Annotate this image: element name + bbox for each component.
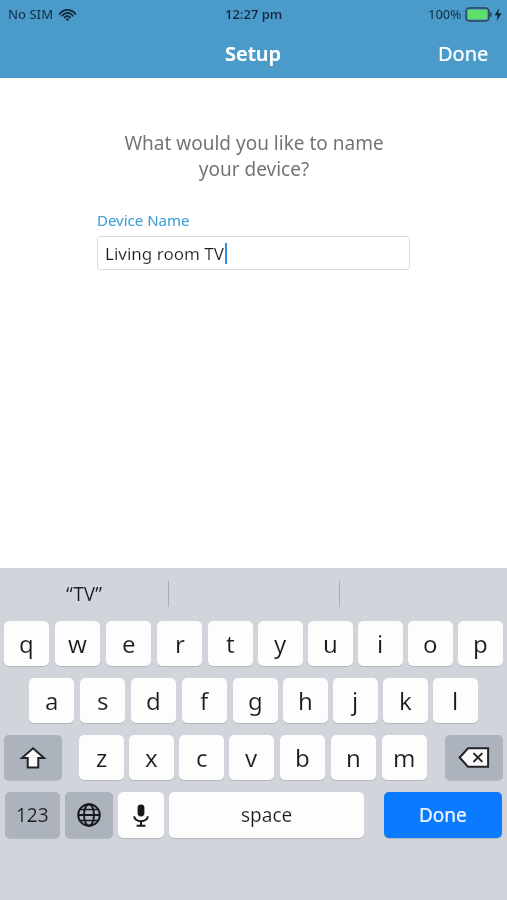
staticText: Setup — [225, 40, 282, 67]
staticText: j — [352, 684, 359, 717]
button[interactable]: Backspace — [445, 734, 503, 780]
button[interactable]: s — [80, 677, 125, 723]
button[interactable]: Shift — [4, 734, 62, 780]
staticText: i — [377, 627, 384, 660]
staticText: z — [96, 741, 108, 774]
staticText: What would you like to name your device? — [124, 130, 384, 181]
staticText: k — [399, 684, 412, 717]
staticText: Done — [419, 802, 467, 828]
staticText: h — [298, 684, 313, 717]
button[interactable]: o — [408, 620, 453, 666]
staticText: q — [19, 627, 34, 660]
button[interactable]: p — [458, 620, 503, 666]
staticText: Living room TV — [105, 242, 224, 265]
button[interactable]: f — [182, 677, 227, 723]
button[interactable]: n — [331, 734, 376, 780]
staticText: r — [175, 627, 185, 660]
button[interactable]: z — [79, 734, 124, 780]
button[interactable]: 123 — [5, 791, 60, 838]
staticText: Done — [438, 40, 489, 67]
button[interactable]: Living room TV — [97, 236, 410, 270]
button[interactable]: y — [258, 620, 303, 666]
staticText: b — [295, 741, 310, 774]
button[interactable]: Done — [420, 32, 507, 75]
staticText: Device Name — [97, 210, 190, 230]
staticText: a — [45, 684, 59, 717]
staticText: space — [241, 802, 293, 828]
staticText: d — [146, 684, 161, 717]
button[interactable]: space — [169, 791, 364, 838]
button[interactable]: c — [179, 734, 224, 780]
staticText: v — [245, 741, 258, 774]
staticText: l — [452, 684, 459, 717]
button[interactable]: k — [383, 677, 428, 723]
button[interactable]: Done — [384, 791, 502, 838]
button[interactable]: d — [131, 677, 176, 723]
button[interactable]: t — [208, 620, 253, 666]
staticText: e — [122, 627, 136, 660]
staticText: No SIM — [8, 5, 54, 23]
button[interactable]: w — [55, 620, 100, 666]
staticText: m — [393, 741, 416, 774]
button[interactable]: e — [106, 620, 151, 666]
button[interactable]: m — [382, 734, 427, 780]
button[interactable]: l — [433, 677, 478, 723]
button[interactable]: a — [29, 677, 74, 723]
staticText: “TV” — [66, 581, 102, 607]
staticText: o — [423, 627, 438, 660]
staticText: x — [145, 741, 158, 774]
button[interactable]: v — [229, 734, 274, 780]
staticText: 12:27 pm — [225, 5, 283, 23]
button[interactable]: h — [283, 677, 328, 723]
button[interactable]: b — [280, 734, 325, 780]
staticText: 123 — [16, 802, 49, 828]
button[interactable]: q — [4, 620, 49, 666]
staticText: y — [274, 627, 287, 660]
staticText: c — [196, 741, 208, 774]
button[interactable]: x — [129, 734, 174, 780]
button[interactable]: j — [333, 677, 378, 723]
staticText: w — [68, 627, 87, 660]
staticText: s — [97, 684, 109, 717]
button[interactable]: r — [157, 620, 202, 666]
button[interactable]: Change keyboard — [65, 791, 113, 838]
button[interactable]: g — [233, 677, 278, 723]
staticText: t — [226, 627, 235, 660]
staticText: u — [323, 627, 338, 660]
button[interactable]: “TV” — [0, 568, 168, 620]
staticText: n — [346, 741, 361, 774]
button[interactable]: i — [358, 620, 403, 666]
button[interactable]: Dictate — [118, 791, 164, 838]
staticText: 100% — [428, 5, 462, 23]
staticText: p — [473, 627, 488, 660]
staticText: g — [248, 684, 263, 717]
staticText: f — [200, 684, 209, 717]
button[interactable]: u — [308, 620, 353, 666]
